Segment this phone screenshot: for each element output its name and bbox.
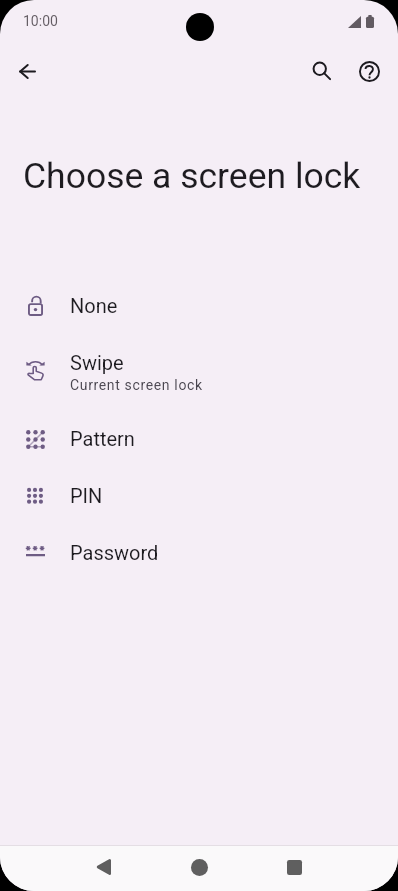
button[interactable]: Help	[345, 47, 393, 95]
staticText: Current screen lock	[70, 377, 203, 393]
button[interactable]: Back	[79, 844, 127, 890]
button[interactable]: Password	[0, 524, 398, 581]
staticText: Password	[70, 541, 159, 564]
button[interactable]: Search	[298, 47, 346, 95]
staticText: Pattern	[70, 427, 135, 450]
button[interactable]: None	[0, 277, 398, 334]
staticText: Choose a screen lock	[23, 155, 361, 197]
staticText: None	[70, 294, 118, 317]
button[interactable]: Swipe	[0, 334, 398, 410]
staticText: PIN	[70, 484, 103, 507]
staticText: 10:00	[23, 13, 58, 29]
button[interactable]: Home	[175, 844, 223, 890]
button[interactable]: Back	[3, 47, 51, 95]
button[interactable]: PIN	[0, 467, 398, 524]
button[interactable]: Pattern	[0, 410, 398, 467]
staticText: Swipe	[70, 351, 124, 374]
button[interactable]: Recents	[270, 844, 318, 890]
